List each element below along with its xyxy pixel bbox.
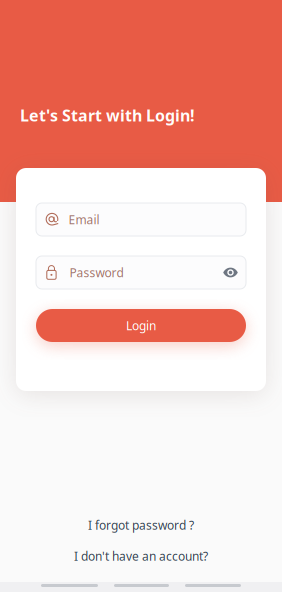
button[interactable]: I don't have an account? xyxy=(60,542,222,570)
button[interactable]: Login xyxy=(36,309,246,342)
staticText: Login xyxy=(126,317,156,333)
staticText: I forgot password ? xyxy=(88,517,194,533)
button[interactable]: I forgot password ? xyxy=(74,511,208,539)
staticText: Let's Start with Login! xyxy=(20,105,195,126)
staticText: I don't have an account? xyxy=(74,548,208,564)
staticText: Email xyxy=(68,211,99,227)
staticText: Password xyxy=(69,264,123,280)
